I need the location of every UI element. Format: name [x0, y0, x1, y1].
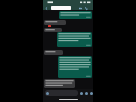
button[interactable] — [44, 79, 75, 88]
button[interactable]: Reaction — [48, 89, 50, 91]
button[interactable] — [59, 11, 92, 19]
button[interactable]: Back — [44, 6, 48, 10]
button[interactable] — [51, 6, 71, 10]
button[interactable] — [44, 50, 63, 55]
button[interactable] — [57, 32, 92, 47]
button[interactable] — [45, 90, 78, 96]
button[interactable]: Camera — [84, 91, 89, 96]
button[interactable] — [44, 20, 66, 25]
button[interactable]: Voice message — [89, 91, 93, 96]
button[interactable] — [44, 28, 62, 32]
button[interactable] — [58, 56, 92, 78]
button[interactable]: Call — [84, 6, 89, 11]
button[interactable]: Video call — [78, 6, 83, 11]
button[interactable]: Attach — [79, 91, 84, 96]
button[interactable]: Video link — [48, 25, 51, 27]
